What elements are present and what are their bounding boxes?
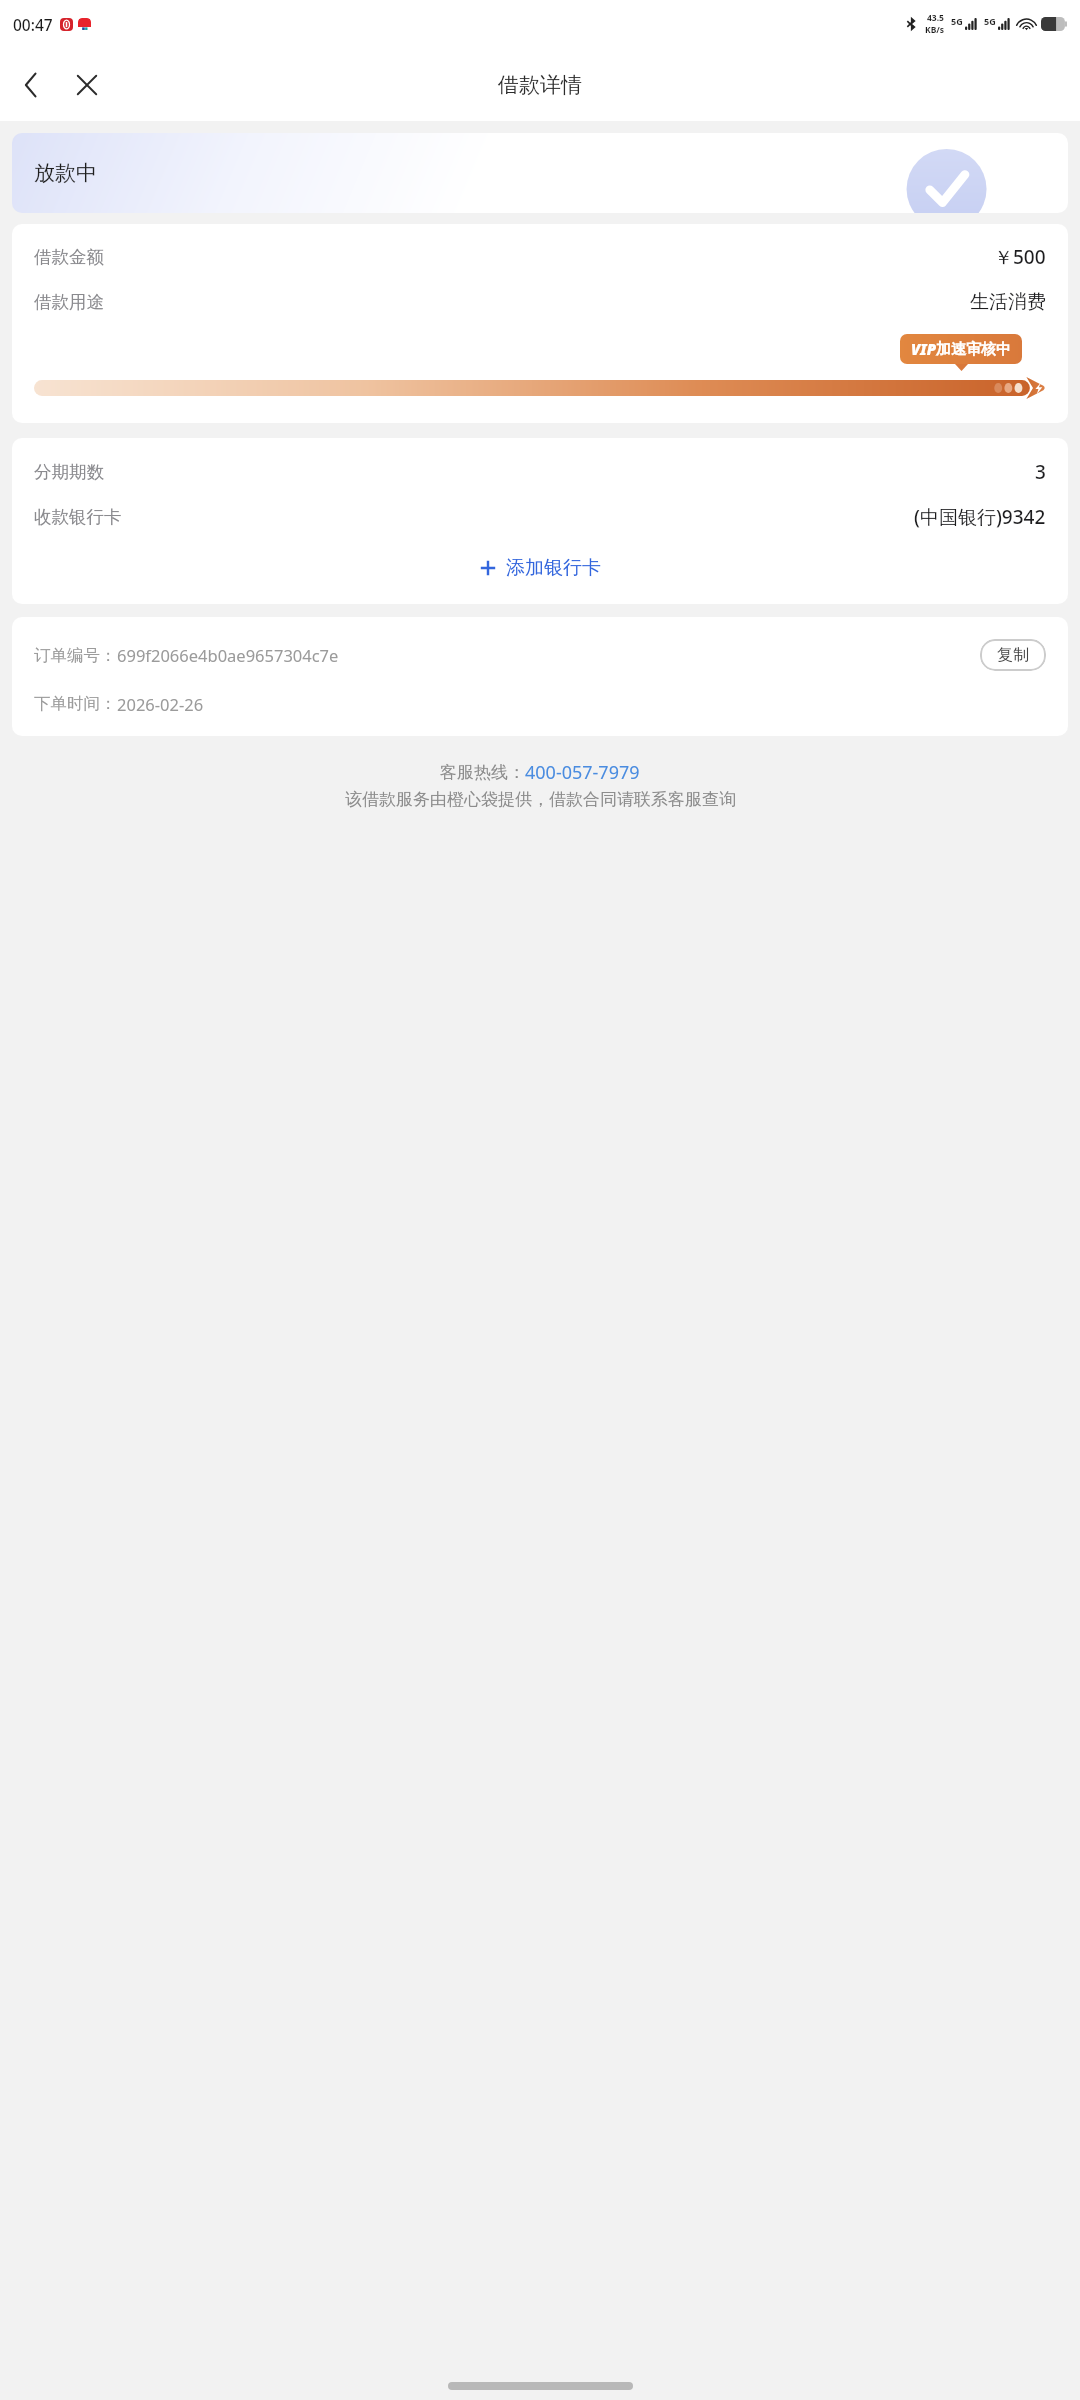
button[interactable]: Back <box>8 62 54 108</box>
button[interactable]: 复制 <box>980 639 1046 671</box>
staticText: 2026-02-26 <box>117 693 204 715</box>
button[interactable]: 客服热线： <box>440 760 640 785</box>
staticText: 43.5 <box>927 12 944 24</box>
staticText: 借款用途 <box>34 291 104 313</box>
staticText: 400-057-7979 <box>525 760 640 785</box>
button[interactable]: 放款中 <box>12 133 1068 213</box>
staticText: 分期期数 <box>34 461 104 483</box>
staticText: 5G <box>951 15 963 27</box>
staticText: 复制 <box>997 645 1029 665</box>
staticText: 借款金额 <box>34 246 104 268</box>
staticText: 生活消费 <box>970 290 1046 314</box>
staticText: 订单编号： <box>34 645 117 666</box>
staticText: 放款中 <box>34 160 97 186</box>
button[interactable]: Close <box>63 61 111 109</box>
staticText: 下单时间： <box>34 693 117 714</box>
button[interactable]: 添加银行卡 <box>34 542 1046 594</box>
staticText: ￥500 <box>994 244 1046 270</box>
staticText: KB/s <box>925 24 945 36</box>
staticText: 收款银行卡 <box>34 506 122 528</box>
staticText: 加速审核中 <box>936 340 1011 359</box>
staticText: (中国银行)9342 <box>914 504 1046 530</box>
staticText: 3 <box>1035 459 1046 485</box>
staticText: 00:47 <box>13 14 53 35</box>
staticText: 该借款服务由橙心袋提供，借款合同请联系客服查询 <box>345 789 736 810</box>
staticText: 添加银行卡 <box>506 556 601 580</box>
staticText: 客服热线： <box>440 762 525 783</box>
staticText: VIP <box>911 339 936 359</box>
staticText: 5G <box>984 15 996 27</box>
staticText: 699f2066e4b0ae9657304c7e <box>117 644 339 666</box>
staticText: 借款详情 <box>498 72 582 98</box>
